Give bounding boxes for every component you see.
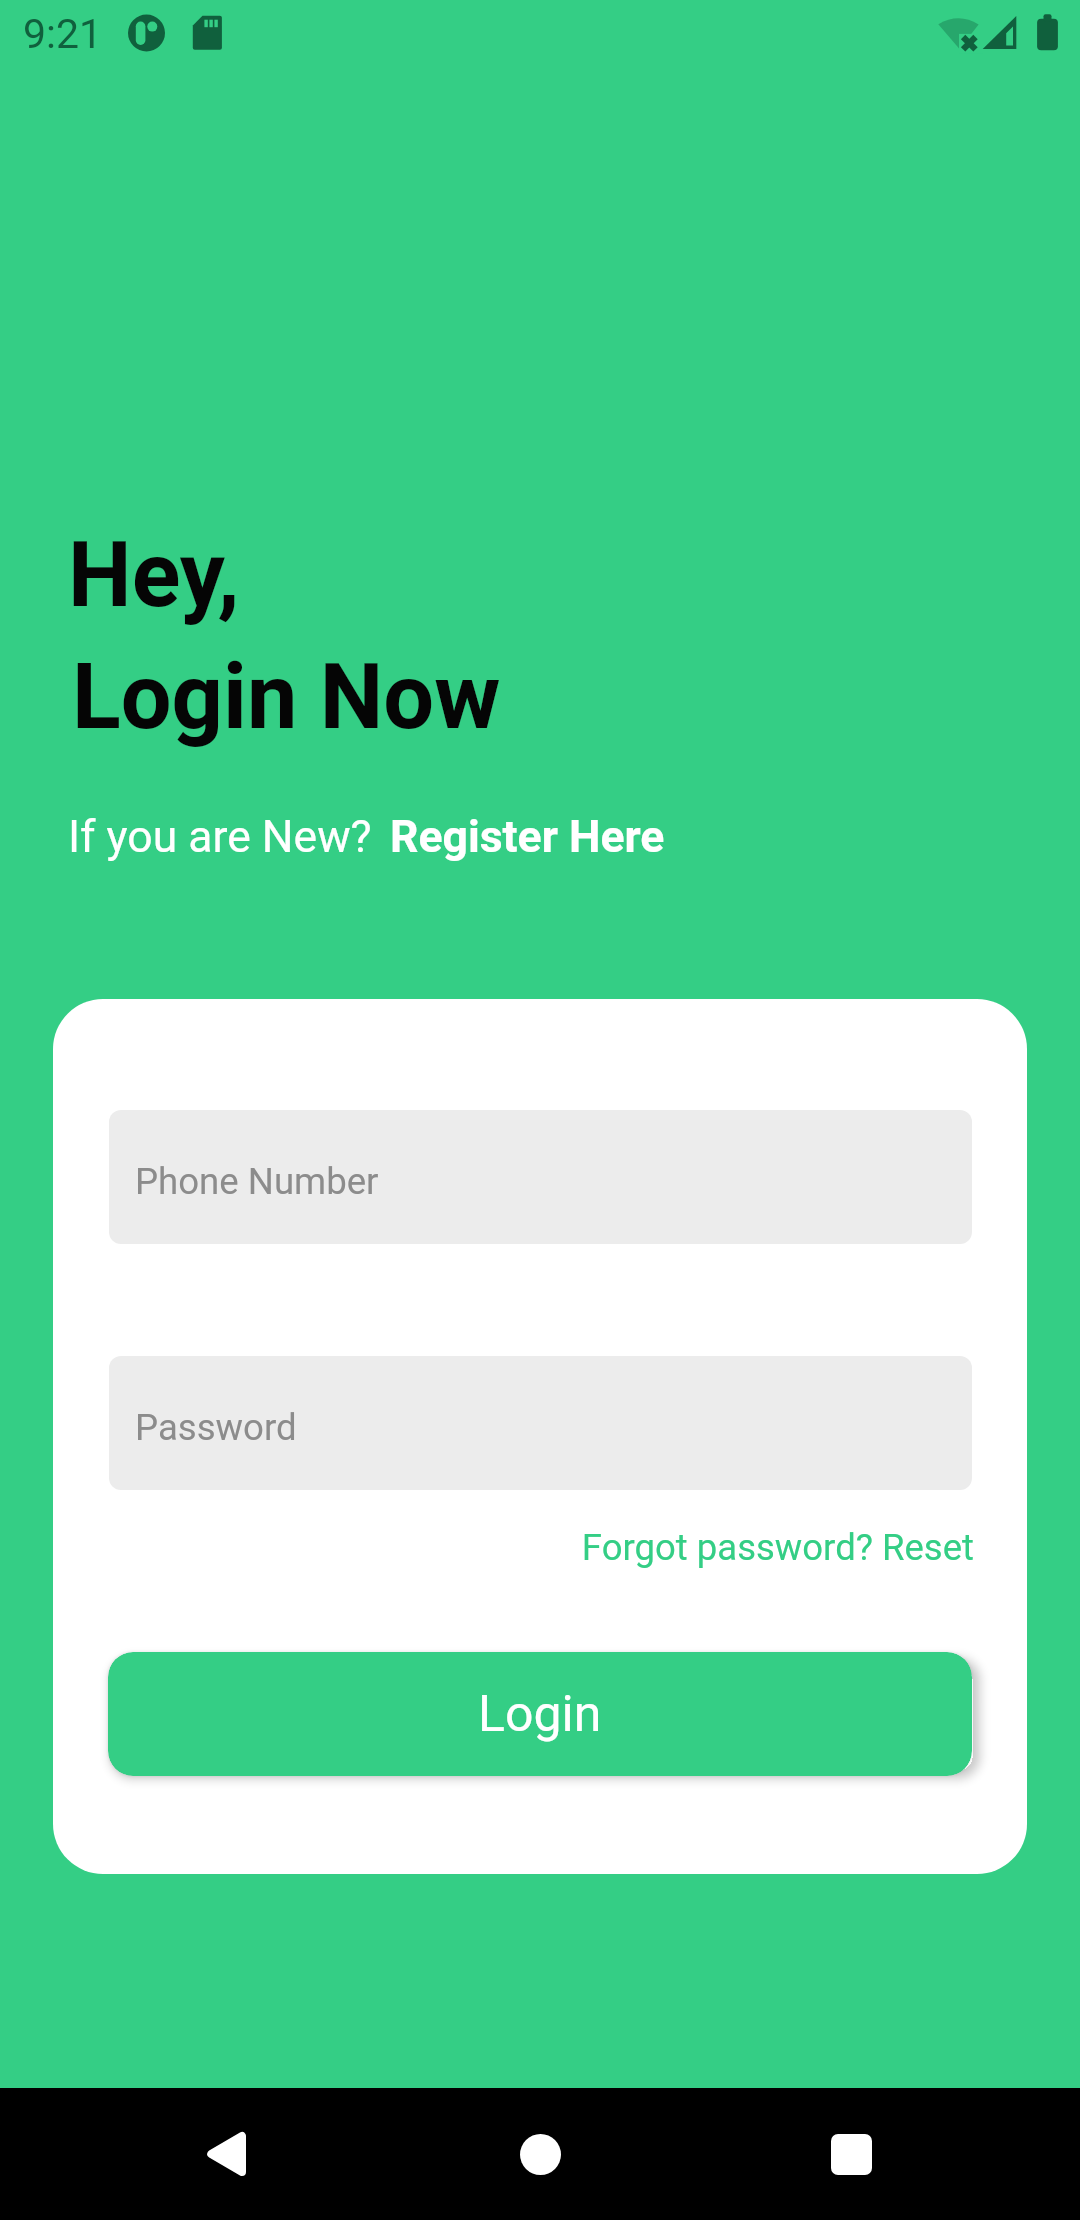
button[interactable]: Login — [108, 1652, 972, 1776]
staticText: Hey, — [68, 523, 240, 628]
button[interactable]: Forgot password? Reset — [574, 1526, 974, 1569]
button[interactable]: Home — [474, 2088, 606, 2220]
button[interactable]: Back — [160, 2088, 292, 2220]
staticText: Password — [135, 1406, 297, 1449]
button[interactable]: Password — [109, 1356, 972, 1490]
staticText: 9:21 — [23, 10, 103, 58]
staticText: Login Now — [72, 645, 501, 750]
button[interactable]: Phone Number — [109, 1110, 972, 1244]
staticText: Login — [478, 1685, 602, 1744]
staticText: Forgot password? Reset — [574, 1526, 974, 1569]
button[interactable]: Recent apps — [785, 2088, 917, 2220]
staticText: Register Here — [390, 811, 665, 863]
staticText: Phone Number — [135, 1160, 379, 1203]
button[interactable]: Register Here — [390, 811, 665, 863]
staticText: If you are New? — [68, 811, 372, 863]
